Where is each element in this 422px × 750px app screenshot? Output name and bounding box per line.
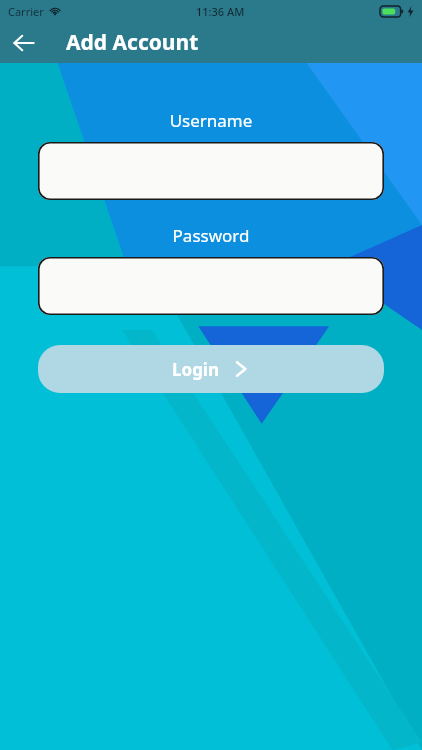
button[interactable]: Back (4, 23, 44, 63)
button[interactable] (38, 142, 384, 200)
staticText: Password (0, 224, 422, 247)
staticText: Carrier (8, 4, 44, 19)
button[interactable] (38, 257, 384, 315)
button[interactable]: Login (38, 345, 384, 393)
staticText: Username (0, 109, 422, 132)
staticText: Login (172, 358, 220, 381)
staticText: 11:36 AM (196, 4, 245, 19)
staticText: Add Account (66, 28, 199, 57)
